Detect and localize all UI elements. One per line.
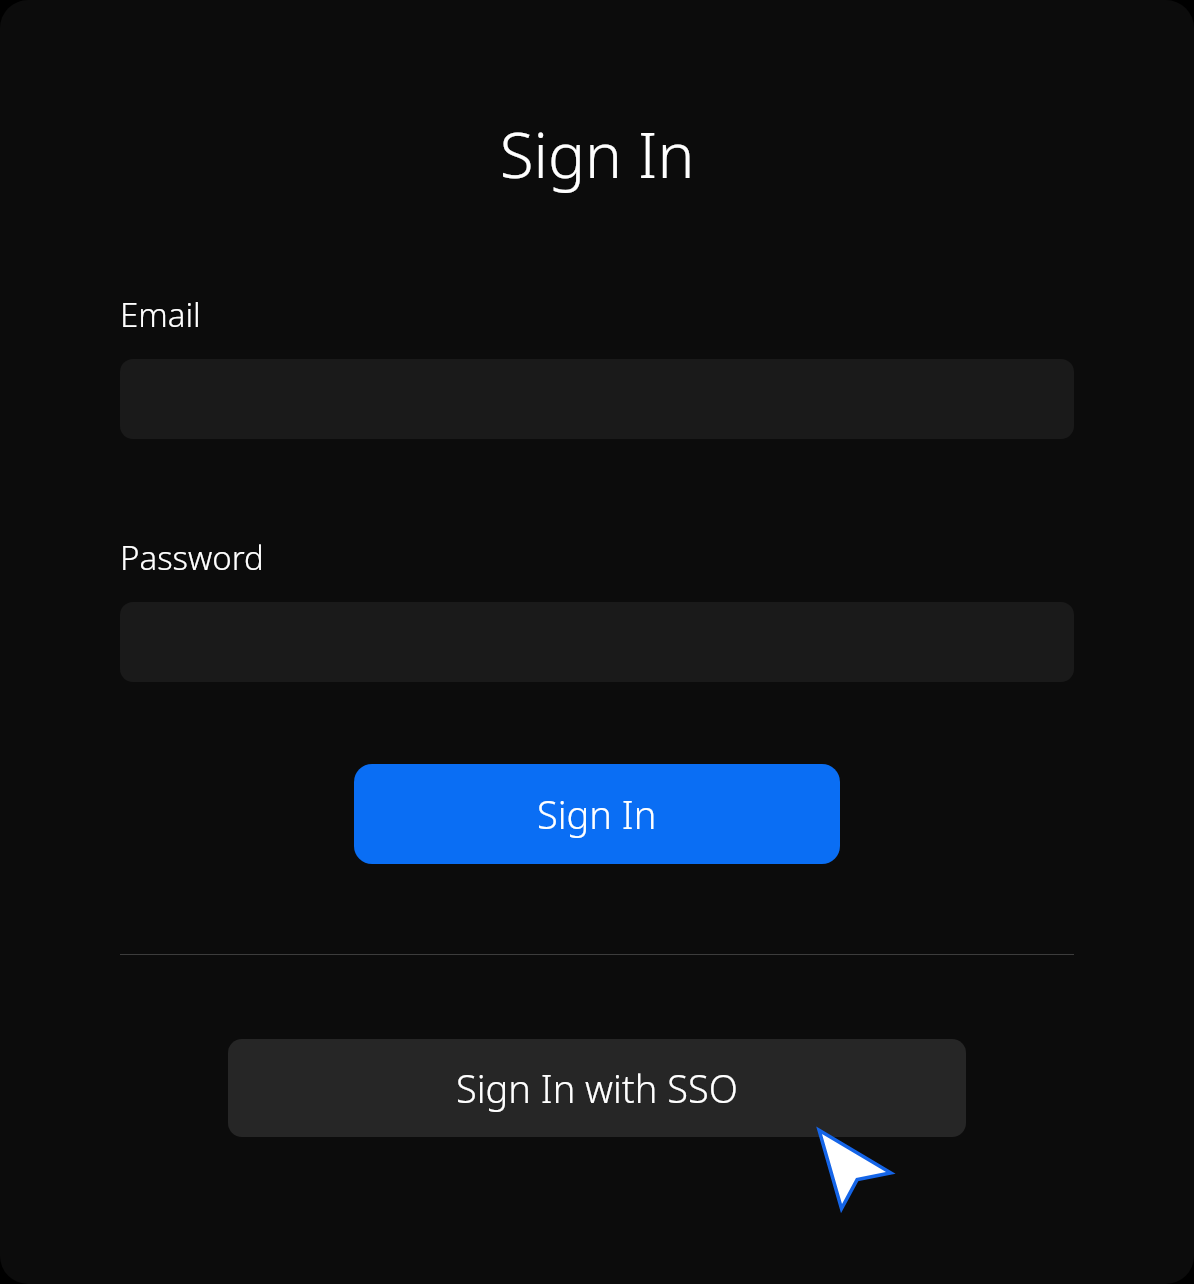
staticText: Password	[120, 535, 264, 580]
staticText: Sign In	[0, 112, 1194, 196]
button[interactable]: Sign In with SSO	[228, 1039, 966, 1137]
button[interactable]: Sign In	[354, 764, 840, 864]
staticText: Email	[120, 292, 201, 337]
staticText: Sign In with SSO	[456, 1062, 738, 1114]
staticText: Sign In	[537, 788, 657, 840]
